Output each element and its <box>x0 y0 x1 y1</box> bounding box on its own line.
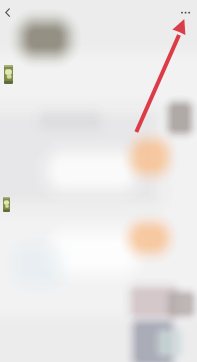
button[interactable]: More <box>176 0 197 26</box>
button[interactable]: Back <box>0 0 26 26</box>
